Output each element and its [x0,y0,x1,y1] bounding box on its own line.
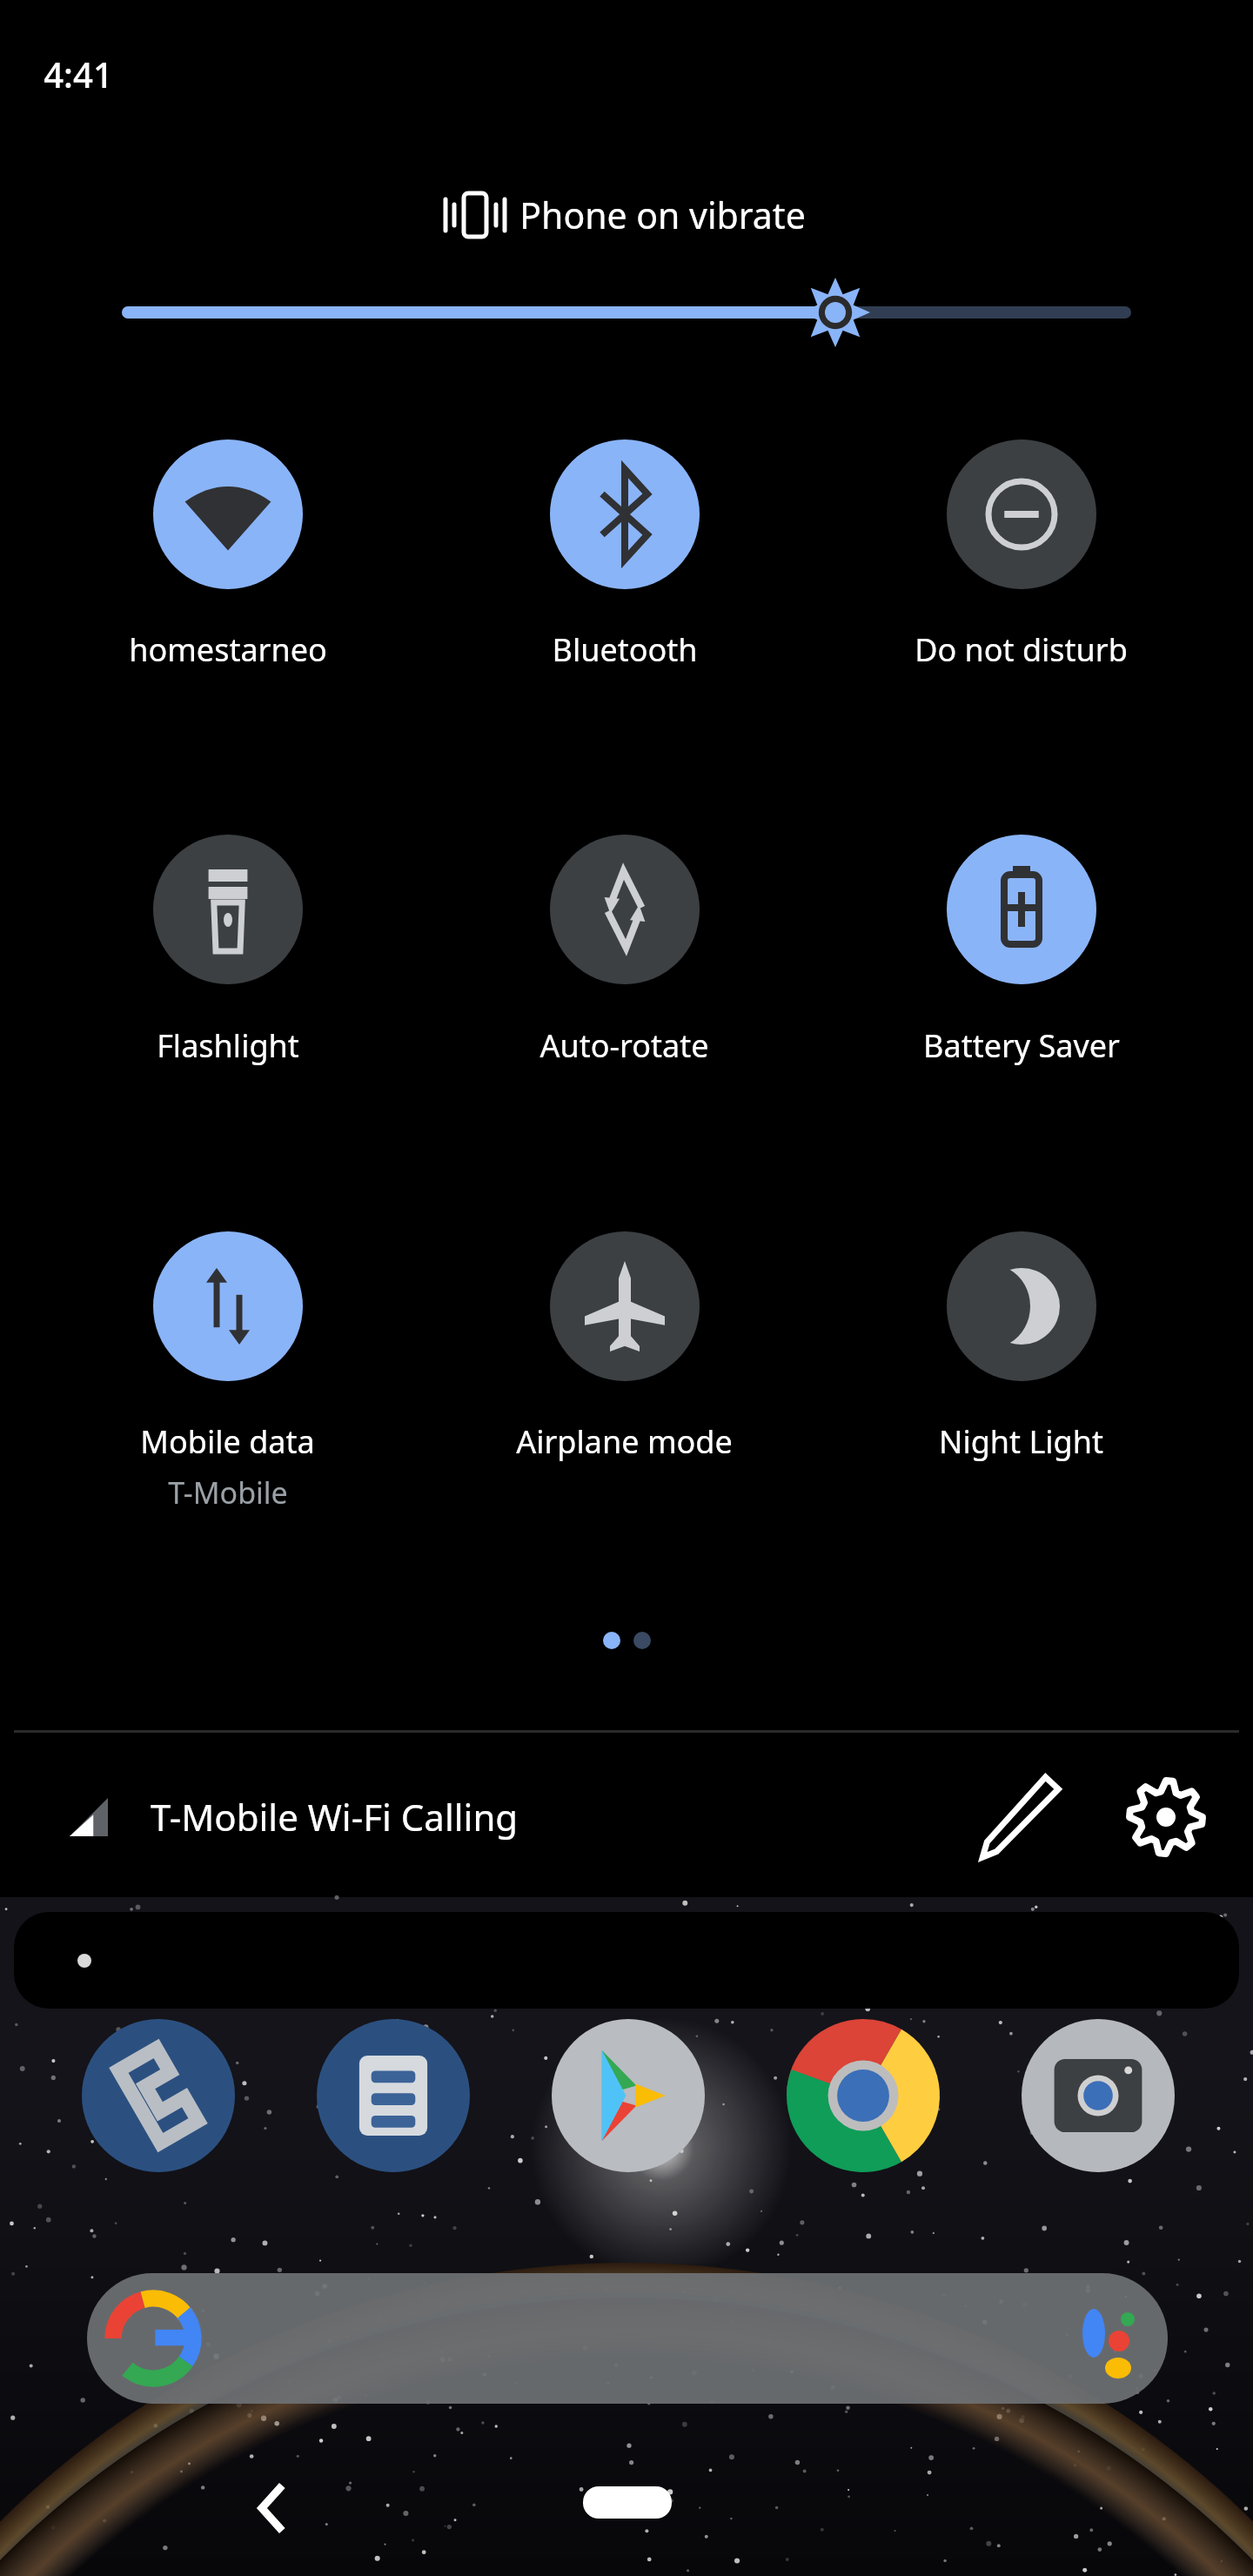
button[interactable]: Battery Saver [898,820,1145,1072]
button[interactable]: Bluetooth [501,425,748,677]
staticText: Flashlight [157,1024,299,1067]
button[interactable]: Flashlight [104,820,352,1072]
button[interactable]: Home [557,2463,696,2559]
staticText: Phone on vibrate [519,191,806,239]
button[interactable]: Brightness [122,278,1131,357]
staticText: 4:41 [44,50,113,97]
staticText: Battery Saver [923,1024,1120,1067]
button[interactable]: Edit [966,1749,1079,1888]
staticText: Mobile data [140,1420,315,1463]
staticText: homestarneo [129,628,327,671]
staticText: T-Mobile Wi-Fi Calling [151,1792,519,1841]
button[interactable]: homestarneo [104,425,352,677]
staticText: T-Mobile [168,1472,288,1513]
button[interactable]: T-Mobile Wi-Fi Calling [14,1749,971,1888]
button[interactable]: Settings [1112,1749,1225,1888]
button[interactable]: Auto-rotate [501,820,748,1072]
button[interactable]: Search [87,2273,1168,2404]
button[interactable]: Notification [14,1912,1239,2009]
staticText: Airplane mode [516,1420,733,1463]
button[interactable]: Do not disturb [898,425,1145,677]
button[interactable]: Night Light [898,1217,1145,1469]
button[interactable]: Back [209,2454,331,2567]
staticText: Do not disturb [915,628,1128,671]
button[interactable]: Airplane mode [501,1217,748,1469]
staticText: Auto-rotate [539,1024,709,1067]
button[interactable]: Mobile data [104,1217,352,1469]
staticText: Bluetooth [552,628,698,671]
staticText: Night Light [939,1420,1103,1463]
